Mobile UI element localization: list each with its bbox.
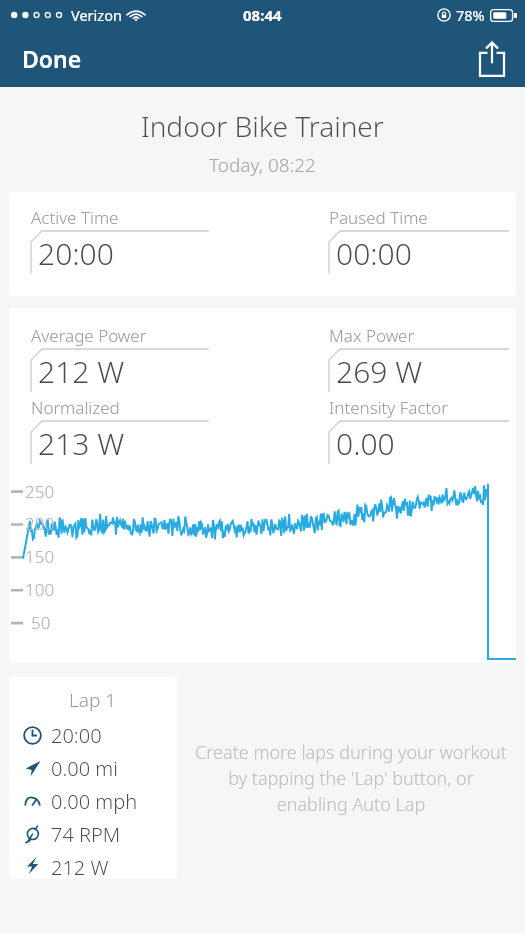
staticText: Max Power	[329, 324, 415, 347]
staticText: 212 W	[38, 351, 125, 392]
staticText: Active Time	[31, 206, 119, 229]
button[interactable]: Active Time	[9, 192, 516, 296]
staticText: Lap 1	[69, 687, 117, 713]
staticText: 213 W	[38, 423, 125, 464]
staticText: 212 W	[51, 854, 109, 876]
staticText: Intensity Factor	[329, 396, 449, 419]
button[interactable]: Lap 1	[9, 677, 177, 879]
staticText: Paused Time	[329, 206, 428, 229]
staticText: 20:00	[51, 722, 102, 749]
button[interactable]: Average Power	[9, 308, 516, 663]
staticText: Verizon	[71, 5, 122, 25]
staticText: 100	[25, 578, 55, 601]
button[interactable]: Share	[459, 34, 525, 84]
staticText: 150	[25, 545, 55, 568]
button[interactable]: Done	[0, 35, 98, 82]
staticText: Create more laps during your workout by …	[193, 740, 509, 816]
staticText: Today, 08:22	[209, 152, 316, 178]
staticText: 74 RPM	[51, 821, 121, 848]
staticText: Normalized	[31, 396, 120, 419]
staticText: Average Power	[31, 324, 147, 347]
staticText: 00:00	[336, 233, 412, 274]
staticText: 0.00 mi	[51, 755, 118, 782]
staticText: 269 W	[336, 351, 423, 392]
staticText: 20:00	[38, 233, 114, 274]
staticText: 0.00	[336, 423, 395, 464]
staticText: Indoor Bike Trainer	[141, 107, 384, 145]
staticText: 0.00 mph	[51, 788, 138, 815]
staticText: 200	[25, 512, 55, 535]
staticText: 250	[25, 480, 55, 503]
staticText: 08:44	[243, 5, 282, 25]
staticText: 50	[31, 611, 51, 634]
staticText: 78%	[456, 5, 485, 25]
staticText: Done	[22, 43, 82, 74]
